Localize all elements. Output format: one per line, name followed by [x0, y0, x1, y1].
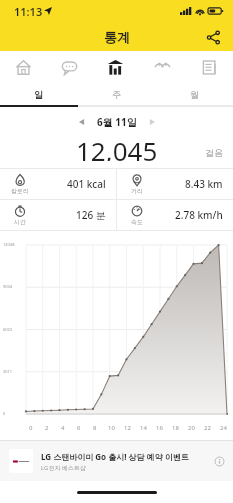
staticText: 12048 — [3, 242, 15, 247]
button[interactable]: 주 — [77, 84, 155, 105]
staticText: 10 — [108, 424, 115, 432]
staticText: 6 — [77, 424, 81, 432]
staticText: 걸음 — [205, 147, 223, 158]
button[interactable]: Stats — [92, 51, 139, 84]
staticText: LG 스탠바이미 Go 출시! 상담 예약 이벤트 — [41, 451, 189, 462]
button[interactable]: News — [186, 51, 233, 84]
staticText: 주 — [112, 89, 121, 100]
staticText: 8.43 km — [185, 177, 223, 191]
staticText: 9034 — [3, 284, 13, 289]
staticText: 20 — [188, 424, 195, 432]
button[interactable]: Previous day — [73, 113, 91, 131]
staticText: 6023 — [3, 327, 13, 332]
button[interactable]: Next day — [143, 113, 161, 131]
staticText: 22 — [204, 424, 211, 432]
staticText: 속도 — [131, 218, 143, 226]
button[interactable]: LG 스탠바이미 Go 출시! 상담 예약 이벤트 — [0, 441, 233, 481]
staticText: 3011 — [3, 369, 13, 374]
staticText: 12 — [124, 424, 131, 432]
staticText: 14 — [140, 424, 147, 432]
staticText: 16 — [156, 424, 163, 432]
staticText: 4 — [61, 424, 65, 432]
staticText: 칼로리 — [11, 187, 29, 195]
button[interactable]: 거리 — [117, 169, 233, 199]
staticText: 월 — [190, 89, 199, 100]
staticText: 18 — [172, 424, 179, 432]
button[interactable]: Home — [0, 51, 46, 84]
staticText: 2.78 km/h — [175, 208, 223, 222]
staticText: 6월 11일 — [97, 115, 137, 129]
staticText: 0 — [3, 411, 6, 416]
button[interactable]: Chat — [46, 51, 92, 84]
button[interactable]: 속도 — [117, 200, 233, 230]
staticText: 2 — [45, 424, 49, 432]
staticText: 통계 — [104, 29, 130, 45]
button[interactable]: 칼로리 — [0, 169, 116, 199]
button[interactable]: Share — [201, 25, 225, 49]
button[interactable]: 월 — [155, 84, 233, 105]
staticText: 시간 — [14, 218, 26, 226]
button[interactable]: Ad info — [213, 455, 225, 467]
staticText: 401 kcal — [67, 177, 106, 191]
staticText: 12,045 — [76, 133, 158, 161]
staticText: 8 — [93, 424, 97, 432]
staticText: 126 분 — [76, 208, 106, 222]
staticText: LG전자 베스트샵 — [41, 464, 86, 472]
staticText: 거리 — [131, 187, 143, 195]
staticText: 0 — [29, 424, 33, 432]
button[interactable]: 시간 — [0, 200, 116, 230]
staticText: 24 — [220, 424, 227, 432]
button[interactable]: 일 — [0, 84, 77, 105]
staticText: 일 — [34, 89, 43, 100]
button[interactable]: Friends — [139, 51, 186, 84]
staticText: 11:13 — [14, 4, 43, 19]
